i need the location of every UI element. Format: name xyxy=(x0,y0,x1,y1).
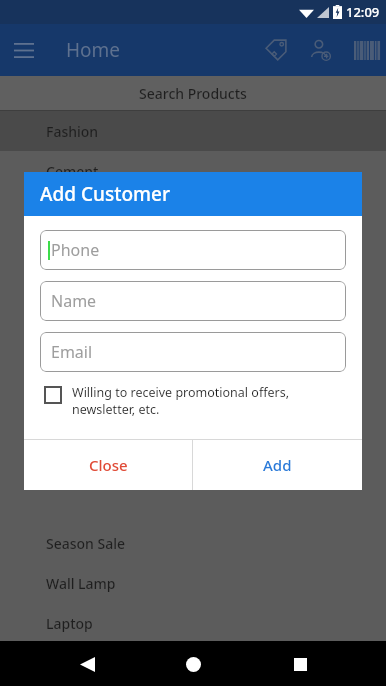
button[interactable]: Cement xyxy=(0,151,386,191)
button[interactable]: Fashion xyxy=(0,111,386,151)
staticText: Add Customer xyxy=(40,181,170,207)
button[interactable]: Name xyxy=(40,281,346,321)
staticText: Fashion xyxy=(46,122,99,141)
staticText: Home xyxy=(66,37,121,63)
button[interactable]: Add xyxy=(193,440,362,490)
staticText: Accessories xyxy=(46,654,124,673)
staticText: Willing to receive promotional offers, n… xyxy=(72,384,290,417)
button[interactable]: Wall Lamp xyxy=(0,563,386,603)
button[interactable]: Back xyxy=(67,644,107,684)
staticText: Add xyxy=(263,455,292,475)
button[interactable]: Email xyxy=(40,332,346,372)
button[interactable]: Open navigation menu xyxy=(0,26,48,74)
staticText: Phone xyxy=(51,239,100,261)
button[interactable]: Offers xyxy=(254,28,298,72)
staticText: Name xyxy=(51,290,97,312)
staticText: Search Products xyxy=(139,84,247,103)
button[interactable]: Phone xyxy=(40,230,346,270)
staticText: Laptop xyxy=(46,614,93,633)
button[interactable]: Add customer xyxy=(298,28,342,72)
button[interactable]: Close xyxy=(24,440,192,490)
staticText: Wall Lamp xyxy=(46,574,116,593)
staticText: Season Sale xyxy=(46,534,126,553)
button[interactable]: Recent apps xyxy=(280,644,320,684)
button[interactable]: Home xyxy=(173,644,213,684)
button[interactable]: Season Sale xyxy=(0,523,386,563)
button[interactable]: Willing to receive promotional offers, n… xyxy=(44,384,346,417)
staticText: Close xyxy=(89,455,128,475)
button[interactable]: Scan barcode xyxy=(342,28,386,72)
staticText: Email xyxy=(51,341,93,363)
button[interactable]: Search Products xyxy=(0,76,386,110)
staticText: 12:09 xyxy=(346,3,380,21)
staticText: Cement xyxy=(46,162,99,181)
button[interactable]: Laptop xyxy=(0,603,386,643)
button[interactable]: Accessories xyxy=(0,643,386,683)
